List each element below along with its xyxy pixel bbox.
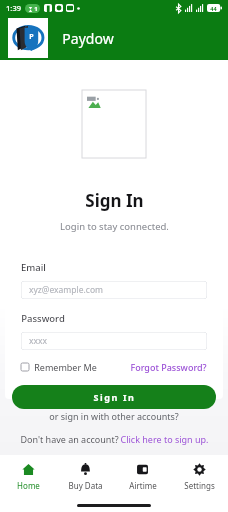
staticText: 1:39 <box>6 3 21 13</box>
staticText: Paydow <box>62 29 114 48</box>
staticText: Sign In <box>85 189 144 212</box>
button[interactable]: Buy Data <box>57 455 114 499</box>
staticText: Password <box>21 312 65 325</box>
staticText: 1 <box>34 5 38 13</box>
staticText: Don't have an account? <box>19 433 120 445</box>
staticText: Home <box>17 480 40 491</box>
staticText: Settings <box>184 480 215 491</box>
staticText: Email <box>21 261 46 274</box>
staticText: Click here to sign up. <box>120 433 209 445</box>
staticText: xxxx <box>29 335 47 347</box>
staticText: P <box>29 32 34 42</box>
staticText: Buy Data <box>68 480 103 491</box>
staticText: or sign in with other accounts? <box>49 410 179 422</box>
button[interactable]: Remember Me <box>21 361 97 373</box>
staticText: Remember Me <box>34 361 97 373</box>
button[interactable]: Paydow logo <box>8 18 48 58</box>
staticText: Sign In <box>93 391 136 403</box>
button[interactable]: Home <box>0 455 57 499</box>
button[interactable]: Sign In <box>12 385 216 409</box>
button[interactable]: Forgot Password? <box>130 361 207 373</box>
button[interactable]: Click here to sign up. <box>120 433 209 445</box>
staticText: Forgot Password? <box>130 361 207 373</box>
staticText: Login to stay connected. <box>60 220 169 233</box>
button[interactable]: Settings <box>171 455 228 499</box>
button[interactable]: Airtime <box>114 455 171 499</box>
staticText: xyz@example.com <box>29 284 103 296</box>
staticText: Airtime <box>129 480 157 491</box>
staticText: 44 <box>210 5 217 12</box>
